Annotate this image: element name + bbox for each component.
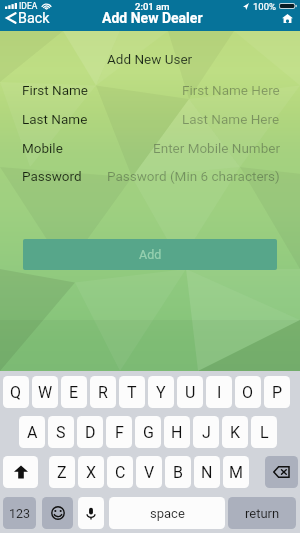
button[interactable]: Shift <box>3 456 38 488</box>
staticText: P <box>272 383 283 402</box>
button[interactable]: return <box>228 497 296 529</box>
staticText: U <box>185 383 196 402</box>
staticText: S <box>56 423 66 442</box>
button[interactable]: Y <box>148 376 174 408</box>
staticText: Add <box>139 247 162 262</box>
staticText: O <box>242 383 254 402</box>
staticText: R <box>98 383 108 402</box>
button[interactable]: X <box>78 456 104 488</box>
staticText: W <box>38 383 53 402</box>
staticText: Last Name Here <box>182 111 280 127</box>
staticText: Add New Dealer <box>102 10 203 26</box>
button[interactable]: S <box>48 416 74 448</box>
button[interactable]: T <box>119 376 145 408</box>
button[interactable]: O <box>235 376 261 408</box>
staticText: F <box>115 423 124 442</box>
staticText: Y <box>156 383 166 402</box>
button[interactable]: C <box>107 456 133 488</box>
button[interactable]: D <box>77 416 103 448</box>
staticText: Password (Min 6 characters) <box>107 168 280 184</box>
staticText: Enter Mobile Number <box>153 140 280 156</box>
staticText: First Name Here <box>182 82 280 98</box>
button[interactable]: Add <box>23 239 277 270</box>
staticText: Mobile <box>22 140 63 156</box>
staticText: L <box>260 423 269 442</box>
staticText: 123 <box>9 506 31 521</box>
button[interactable]: M <box>223 456 249 488</box>
staticText: Z <box>57 463 67 482</box>
staticText: space <box>150 506 185 521</box>
staticText: K <box>230 423 241 442</box>
button[interactable]: Back <box>0 9 300 27</box>
button[interactable]: W <box>32 376 58 408</box>
staticText: M <box>229 463 243 482</box>
button[interactable]: Z <box>49 456 75 488</box>
button[interactable]: G <box>135 416 161 448</box>
staticText: V <box>144 463 155 482</box>
staticText: B <box>173 463 183 482</box>
staticText: I <box>217 383 222 402</box>
button[interactable]: E <box>61 376 87 408</box>
staticText: 100% <box>253 1 276 12</box>
staticText: N <box>201 463 213 482</box>
button[interactable]: I <box>206 376 232 408</box>
staticText: Q <box>10 383 22 402</box>
button[interactable]: H <box>164 416 190 448</box>
button[interactable]: L <box>251 416 277 448</box>
staticText: H <box>171 423 183 442</box>
button[interactable]: B <box>165 456 191 488</box>
button[interactable]: U <box>177 376 203 408</box>
staticText: A <box>27 423 38 442</box>
staticText: E <box>69 383 79 402</box>
staticText: Back <box>18 10 50 27</box>
button[interactable]: 123 <box>3 497 36 529</box>
button[interactable]: Q <box>3 376 29 408</box>
button[interactable]: Backspace <box>265 456 298 488</box>
button[interactable]: V <box>136 456 162 488</box>
staticText: Last Name <box>22 111 88 127</box>
button[interactable]: space <box>109 497 225 529</box>
button[interactable]: J <box>193 416 219 448</box>
staticText: G <box>143 423 154 442</box>
button[interactable]: Emoji <box>42 497 73 529</box>
button[interactable]: P <box>264 376 290 408</box>
staticText: D <box>85 423 96 442</box>
button[interactable]: F <box>106 416 132 448</box>
staticText: Add New User <box>107 51 193 67</box>
button[interactable]: K <box>222 416 248 448</box>
staticText: C <box>115 463 126 482</box>
staticText: 2:01 am <box>135 1 170 12</box>
staticText: T <box>127 383 137 402</box>
button[interactable]: Voice input <box>78 497 104 529</box>
staticText: First Name <box>22 82 89 98</box>
button[interactable]: R <box>90 376 116 408</box>
staticText: IDEA <box>19 1 38 11</box>
staticText: Password <box>22 168 82 184</box>
button[interactable]: Home <box>275 9 299 27</box>
staticText: J <box>202 423 211 442</box>
staticText: return <box>245 506 280 521</box>
staticText: X <box>86 463 97 482</box>
button[interactable]: N <box>194 456 220 488</box>
button[interactable]: A <box>19 416 45 448</box>
